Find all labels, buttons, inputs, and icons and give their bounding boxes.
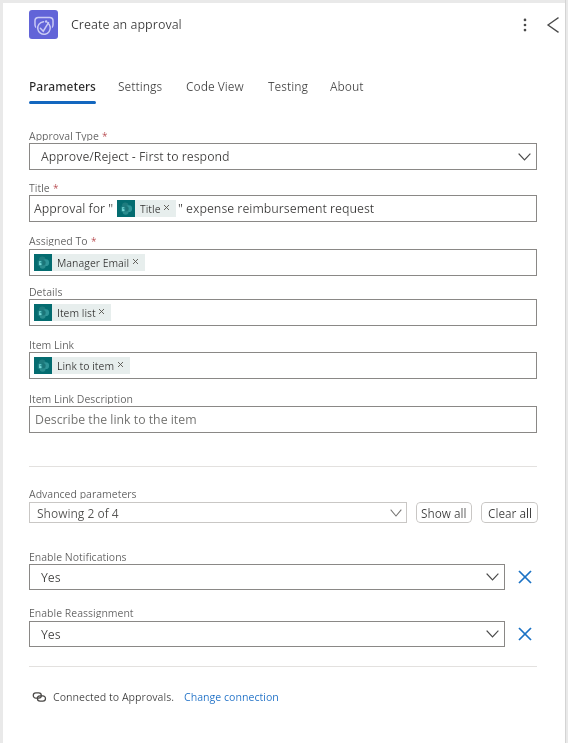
button[interactable]: Code View — [186, 78, 244, 104]
button[interactable]: Remove — [514, 620, 536, 648]
staticText: * — [102, 129, 108, 141]
staticText: Showing 2 of 4 — [37, 505, 119, 521]
button[interactable]: More options — [509, 9, 541, 41]
staticText: Advanced parameters — [29, 487, 137, 499]
staticText: Manager Email — [57, 256, 130, 270]
staticText: Yes — [41, 626, 61, 643]
button[interactable]: Showing 2 of 4 — [29, 502, 407, 523]
staticText: Title — [29, 181, 50, 193]
button[interactable]: Clear all — [481, 502, 538, 523]
staticText: Change connection — [184, 690, 279, 704]
staticText: Approve/Reject - First to respond — [41, 148, 230, 165]
button[interactable]: Remove — [514, 563, 536, 591]
staticText: * — [91, 234, 97, 246]
staticText: About — [330, 78, 364, 94]
staticText: Testing — [268, 78, 308, 94]
button[interactable]: About — [330, 78, 364, 104]
button[interactable]: Describe the link to the item — [29, 406, 537, 433]
staticText: Approval for " — [34, 200, 114, 217]
staticText: Assigned To — [29, 234, 88, 246]
staticText: Connected to Approvals. — [53, 690, 174, 704]
button[interactable]: Approve/Reject - First to respond — [29, 143, 537, 170]
button[interactable]: Collapse — [537, 9, 568, 41]
staticText: Item Link — [29, 338, 75, 350]
staticText: Approval Type — [29, 129, 99, 141]
staticText: Describe the link to the item — [35, 411, 197, 428]
staticText: Link to item — [57, 359, 115, 373]
button[interactable]: Settings — [118, 78, 163, 104]
staticText: Item list — [57, 306, 96, 320]
staticText: Enable Notifications — [29, 550, 127, 562]
staticText: Enable Reassignment — [29, 606, 134, 618]
button[interactable]: Yes — [29, 621, 505, 647]
button[interactable]: Manager Email — [29, 249, 537, 276]
button[interactable]: Show all — [416, 502, 472, 523]
staticText: Parameters — [29, 78, 96, 94]
button[interactable]: Yes — [29, 564, 505, 590]
staticText: Settings — [118, 78, 163, 94]
staticText: Create an approval — [71, 16, 182, 33]
staticText: * — [53, 181, 59, 193]
staticText: Yes — [41, 569, 61, 586]
button[interactable]: Item list — [29, 299, 537, 326]
button[interactable]: Approval for " — [29, 195, 537, 222]
staticText: Details — [29, 285, 63, 297]
button[interactable]: Change connection — [184, 690, 279, 704]
staticText: " expense reimbursement request — [178, 200, 375, 217]
staticText: Code View — [186, 78, 244, 94]
staticText: Item Link Description — [29, 392, 133, 404]
staticText: Title — [140, 202, 161, 216]
button[interactable]: Link to item — [29, 352, 537, 379]
button[interactable]: Parameters — [29, 78, 96, 104]
button[interactable]: Testing — [268, 78, 308, 104]
staticText: Show all — [421, 505, 467, 521]
staticText: Clear all — [488, 505, 532, 521]
